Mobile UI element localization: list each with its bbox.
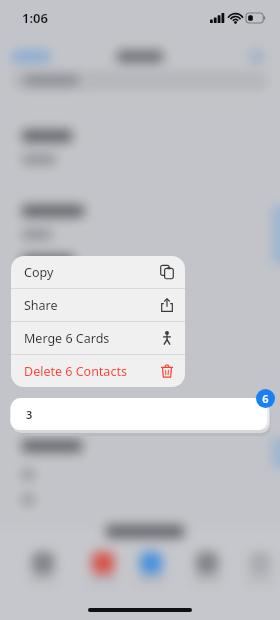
staticText: 3 xyxy=(26,407,33,422)
button[interactable]: Delete 6 Contacts xyxy=(11,355,185,387)
other: 6 selected xyxy=(256,389,275,408)
staticText: Delete 6 Contacts xyxy=(24,363,160,380)
staticText: 1:06 xyxy=(22,9,48,27)
staticText: Copy xyxy=(24,264,160,281)
staticText: 6 xyxy=(262,391,269,406)
staticText: Merge 6 Cards xyxy=(24,330,160,347)
button[interactable]: 3 xyxy=(11,398,267,430)
button[interactable]: Merge 6 Cards xyxy=(11,322,185,354)
staticText: Share xyxy=(24,297,160,314)
button[interactable]: Share xyxy=(11,289,185,321)
button[interactable]: Copy xyxy=(11,256,185,288)
